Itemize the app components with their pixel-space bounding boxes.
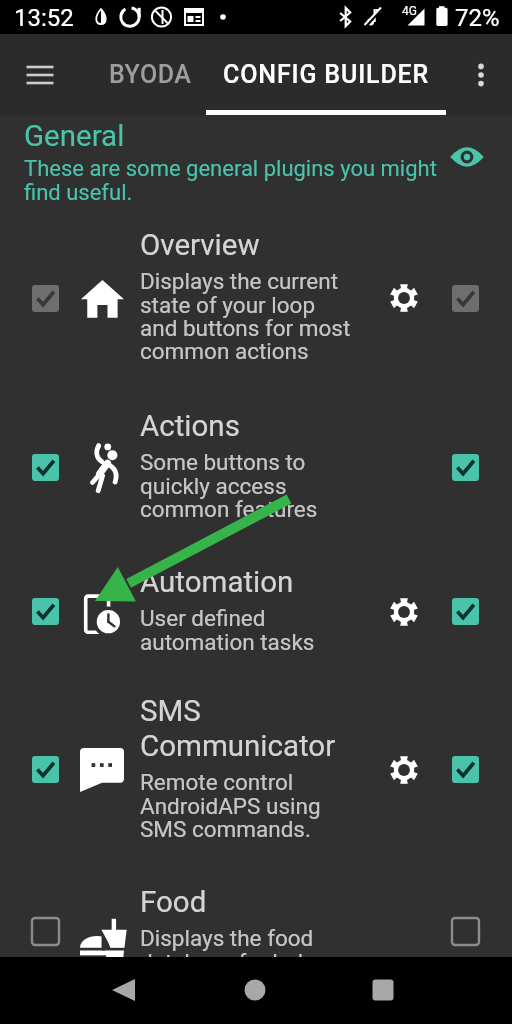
button[interactable]: Enable plugin [32, 918, 59, 945]
staticText: Actions [140, 409, 240, 444]
button[interactable]: CONFIG BUILDER [206, 46, 446, 102]
button[interactable]: Show in menu [452, 454, 479, 481]
button[interactable]: Enable plugin [32, 454, 59, 481]
button[interactable]: Plugin preferences [382, 590, 426, 634]
staticText: Food [140, 885, 207, 920]
button[interactable]: Recent apps [351, 958, 415, 1022]
staticText: 72% [455, 4, 500, 32]
button[interactable]: Plugin preferences [382, 748, 426, 792]
button[interactable]: Show in menu [452, 285, 479, 312]
button[interactable]: Plugin preferences [382, 276, 426, 320]
button[interactable]: Back [92, 958, 156, 1022]
button[interactable]: Enable plugin [32, 598, 59, 625]
staticText: General [24, 119, 125, 154]
button[interactable]: Show in menu [452, 598, 479, 625]
button[interactable]: More options [459, 53, 503, 97]
button[interactable]: Home [223, 958, 287, 1022]
staticText: SMS Communicator [140, 694, 336, 763]
staticText: Displays the current state of your loop … [140, 268, 351, 364]
button[interactable]: Open navigation menu [18, 53, 62, 97]
staticText: Displays the food database for bolus [140, 925, 328, 975]
button[interactable]: BYODA [102, 46, 198, 102]
staticText: CONFIG BUILDER [223, 60, 430, 89]
staticText: Automation [140, 565, 294, 600]
staticText: Overview [140, 228, 260, 263]
button[interactable]: Show in menu [452, 918, 479, 945]
staticText: 4G [402, 4, 417, 18]
button[interactable]: Enable plugin [32, 285, 59, 312]
staticText: These are some general plugins you might… [24, 156, 474, 206]
staticText: Some buttons to quickly access common fe… [140, 449, 318, 522]
button[interactable]: Show in menu [452, 756, 479, 783]
staticText: 13:52 [14, 4, 74, 32]
button[interactable]: Toggle visibility [445, 135, 489, 179]
staticText: Remote control AndroidAPS using SMS comm… [140, 769, 321, 842]
staticText: User defined automation tasks [140, 605, 315, 655]
button[interactable]: Enable plugin [32, 756, 59, 783]
staticText: BYODA [109, 60, 192, 89]
